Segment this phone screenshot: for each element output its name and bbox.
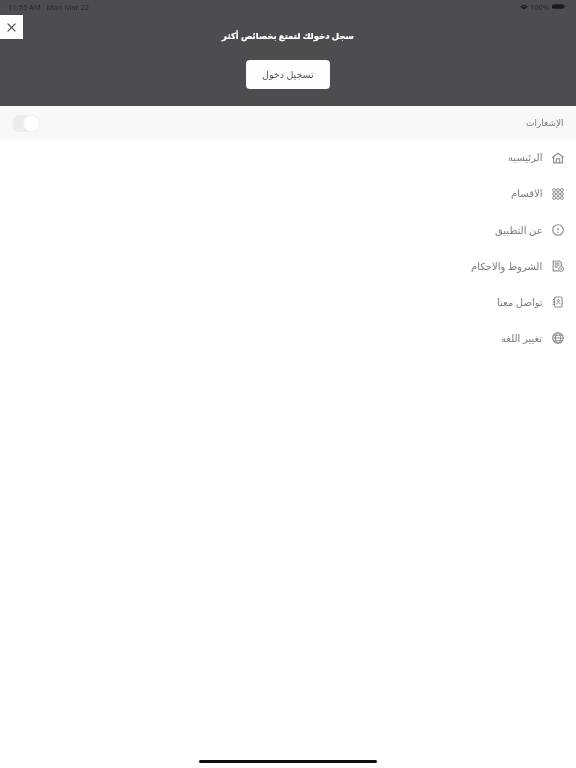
- other: Terms: [552, 260, 564, 272]
- button[interactable]: تغيير اللغه: [0, 320, 576, 356]
- staticText: تغيير اللغه: [501, 331, 543, 345]
- button[interactable]: تسجيل دخول: [246, 60, 330, 89]
- button[interactable]: Toggle notifications: [0, 106, 576, 140]
- other: Contact: [552, 296, 564, 308]
- button[interactable]: Close: [0, 15, 23, 39]
- staticText: سجل دخولك لتمتع بخصائص أكثر: [222, 30, 354, 42]
- other: Sections: [552, 188, 564, 200]
- button[interactable]: تواصل معنا: [0, 284, 576, 320]
- staticText: الإشعارات: [526, 118, 564, 128]
- other: Language: [552, 332, 564, 344]
- staticText: تواصل معنا: [497, 295, 543, 309]
- staticText: 100%: [530, 2, 550, 12]
- button[interactable]: الشروط والاحكام: [0, 248, 576, 284]
- other: About: [552, 224, 564, 236]
- staticText: عن التطبيق: [495, 223, 543, 237]
- staticText: 11:55 AM Mon Mar 22: [8, 2, 90, 12]
- button[interactable]: الرئيسيه: [0, 140, 576, 176]
- other: Home: [552, 152, 564, 164]
- staticText: تسجيل دخول: [262, 68, 314, 81]
- staticText: الاقسام: [511, 188, 543, 200]
- staticText: الشروط والاحكام: [471, 259, 543, 273]
- button[interactable]: عن التطبيق: [0, 212, 576, 248]
- button[interactable]: الاقسام: [0, 176, 576, 212]
- staticText: الرئيسيه: [508, 152, 543, 164]
- button[interactable]: Toggle notifications: [12, 115, 40, 132]
